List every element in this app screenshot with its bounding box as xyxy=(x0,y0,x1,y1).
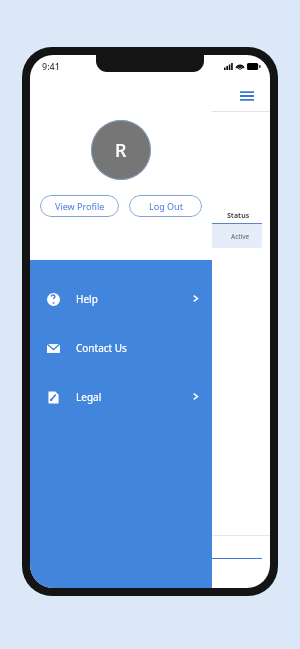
button[interactable]: View Profile xyxy=(40,195,119,217)
staticText: 9:41 xyxy=(42,60,60,72)
staticText: R xyxy=(115,138,127,163)
staticText: Help xyxy=(76,292,98,306)
staticText: Status xyxy=(227,211,250,221)
button[interactable]: Legal xyxy=(30,372,212,421)
button[interactable]: Continue xyxy=(66,332,132,350)
staticText: Legal xyxy=(76,390,102,404)
button[interactable]: Contact Us xyxy=(30,323,212,372)
button[interactable]: Log Out xyxy=(129,195,202,217)
staticText: Continue xyxy=(84,336,114,346)
staticText: TODAY xyxy=(137,118,163,128)
staticText: Log Out xyxy=(149,200,183,212)
button[interactable]: Help xyxy=(30,274,212,323)
staticText: View Profile xyxy=(55,200,105,212)
staticText: What would you like to do? xyxy=(64,149,136,169)
button[interactable]: Menu xyxy=(234,83,260,109)
staticText: Please select a Choice below xyxy=(64,295,116,315)
staticText: Active xyxy=(231,232,250,241)
staticText: Contact Us xyxy=(76,341,127,355)
staticText: Name xyxy=(78,211,99,221)
